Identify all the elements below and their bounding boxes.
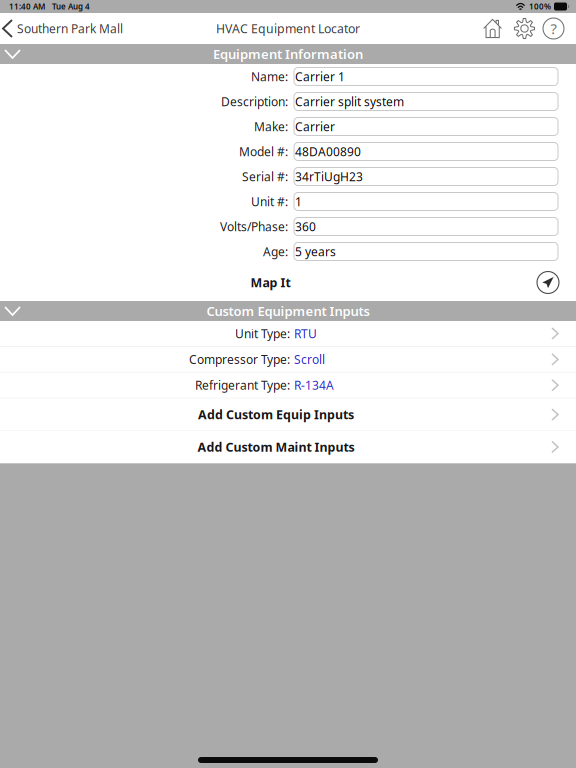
staticText: 360 <box>295 218 316 234</box>
staticText: 48DA00890 <box>295 143 361 159</box>
staticText: 100% <box>529 1 551 12</box>
staticText: Custom Equipment Inputs <box>206 302 369 320</box>
staticText: 5 years <box>295 243 336 259</box>
staticText: Make: <box>254 118 288 134</box>
staticText: Equipment Information <box>213 45 363 63</box>
staticText: Description: <box>221 93 288 109</box>
staticText: ? <box>550 19 556 38</box>
staticText: Tue Aug 4 <box>52 1 90 12</box>
staticText: Add Custom Maint Inputs <box>197 438 354 455</box>
staticText: Unit #: <box>251 193 288 209</box>
button[interactable]: Refrigerant Type: <box>0 373 576 399</box>
staticText: 34rTiUgH23 <box>295 168 363 184</box>
staticText: Refrigerant Type: <box>195 377 290 393</box>
button[interactable]: Southern Park Mall <box>0 13 123 44</box>
staticText: HVAC Equipment Locator <box>216 20 360 37</box>
staticText: Scroll <box>294 351 325 367</box>
staticText: Carrier split system <box>295 93 404 109</box>
staticText: Southern Park Mall <box>17 20 123 36</box>
button[interactable]: Compressor Type: <box>0 347 576 373</box>
staticText: 11:40 AM <box>9 1 45 12</box>
button[interactable]: Map It <box>0 264 576 301</box>
button[interactable]: Settings <box>504 18 535 39</box>
staticText: Unit Type: <box>235 325 290 341</box>
staticText: Compressor Type: <box>189 351 290 367</box>
staticText: Carrier <box>295 118 335 134</box>
staticText: Map It <box>250 274 290 291</box>
staticText: R-134A <box>294 377 334 393</box>
staticText: Add Custom Equip Inputs <box>198 406 354 423</box>
staticText: Name: <box>251 68 288 84</box>
staticText: Carrier 1 <box>295 68 345 84</box>
button[interactable]: Unit Type: <box>0 321 576 347</box>
button[interactable]: Add Custom Maint Inputs <box>0 431 576 463</box>
staticText: Serial #: <box>242 168 288 184</box>
staticText: Model #: <box>239 143 288 159</box>
staticText: Volts/Phase: <box>220 218 288 234</box>
staticText: Age: <box>263 243 288 259</box>
button[interactable]: Add Custom Equip Inputs <box>0 399 576 431</box>
button[interactable]: Help <box>535 18 564 39</box>
button[interactable]: Home <box>483 18 504 39</box>
staticText: 1 <box>295 193 302 209</box>
staticText: RTU <box>294 325 317 341</box>
